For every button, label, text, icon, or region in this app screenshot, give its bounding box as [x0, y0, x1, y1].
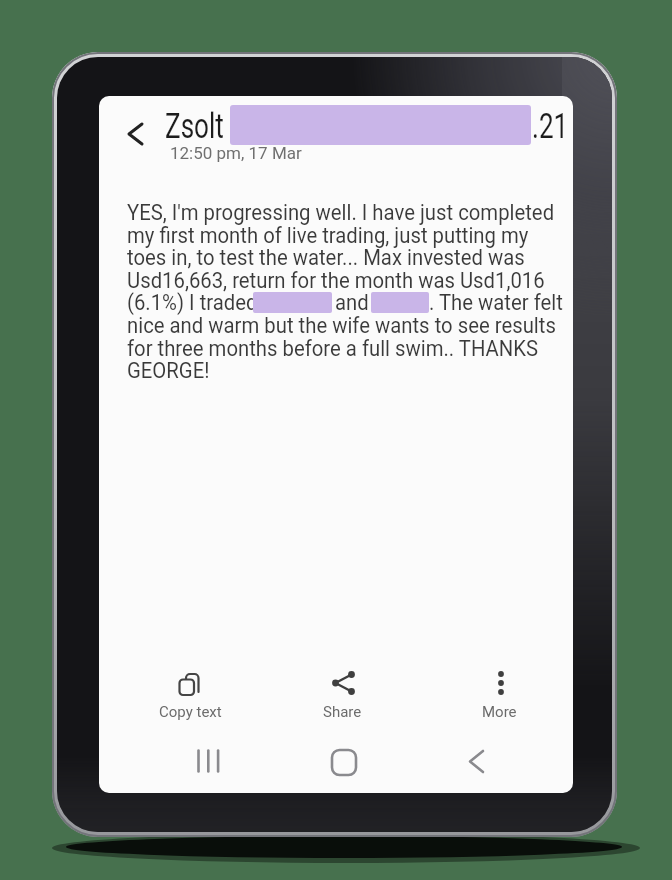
button[interactable]: Share — [309, 662, 379, 726]
staticText: for three months before a full swim.. TH… — [127, 335, 539, 361]
staticText: More — [482, 703, 517, 721]
staticText: Copy text — [159, 703, 222, 721]
button[interactable] — [187, 742, 231, 782]
button[interactable]: More — [469, 662, 533, 726]
staticText: nice and warm but the wife wants to see … — [127, 312, 556, 338]
button[interactable] — [123, 120, 147, 148]
staticText: Zsolt — [165, 105, 224, 146]
staticText: 12:50 pm, 17 Mar — [170, 143, 302, 163]
staticText: (6.1%) I traded — [127, 289, 258, 315]
staticText: and — [335, 289, 369, 315]
staticText: toes in, to test the water... Max invest… — [127, 244, 525, 270]
button[interactable]: Copy text — [147, 662, 231, 726]
button[interactable] — [322, 742, 366, 782]
staticText: my first month of live trading, just put… — [127, 222, 529, 248]
staticText: Share — [323, 703, 362, 721]
staticText: . The water felt — [429, 289, 563, 315]
button[interactable] — [454, 742, 498, 782]
staticText: GEORGE! — [127, 357, 210, 383]
staticText: Usd16,663, return for the month was Usd1… — [127, 267, 545, 293]
staticText: YES, I'm progressing well. I have just c… — [127, 199, 555, 225]
staticText: .21 — [532, 105, 568, 146]
